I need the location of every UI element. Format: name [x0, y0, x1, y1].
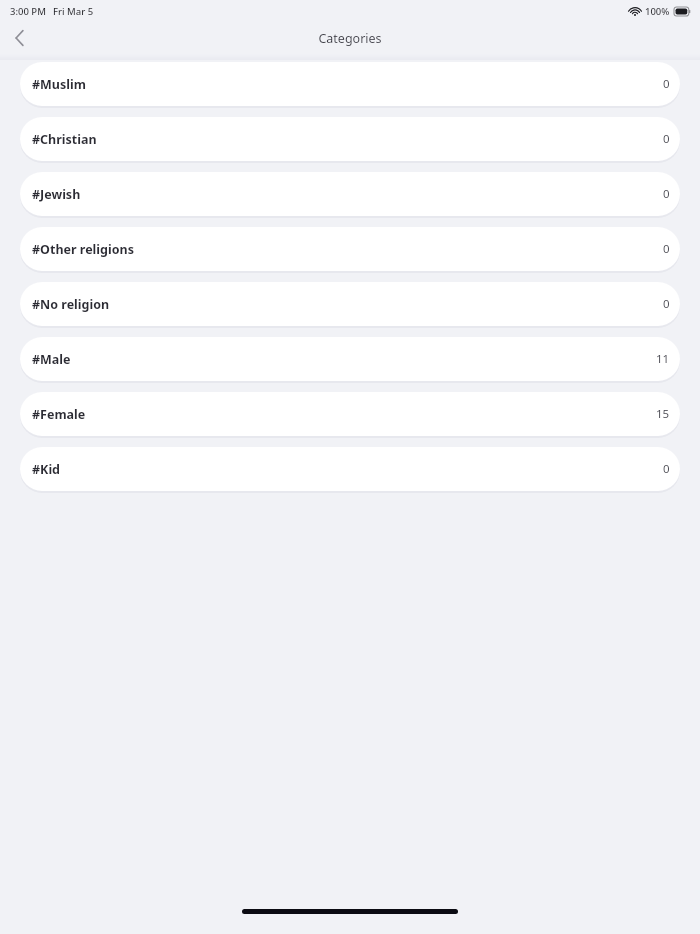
staticText: #Jewish — [32, 186, 81, 203]
button[interactable]: #Kid — [20, 447, 680, 491]
button[interactable]: Back — [4, 23, 34, 53]
button[interactable]: #Christian — [20, 117, 680, 161]
staticText: #No religion — [32, 296, 110, 313]
staticText: 15 — [656, 406, 670, 422]
staticText: 0 — [663, 461, 670, 477]
button[interactable]: #No religion — [20, 282, 680, 326]
button[interactable]: #Other religions — [20, 227, 680, 271]
staticText: #Muslim — [32, 76, 86, 93]
staticText: 11 — [656, 351, 670, 367]
staticText: 0 — [663, 186, 670, 202]
staticText: 0 — [663, 241, 670, 257]
staticText: #Christian — [32, 131, 97, 148]
staticText: 100% — [645, 5, 670, 18]
staticText: Fri Mar 5 — [53, 5, 94, 18]
button[interactable]: #Male — [20, 337, 680, 381]
staticText: 3:00 PM — [10, 5, 46, 18]
button[interactable]: #Jewish — [20, 172, 680, 216]
staticText: #Male — [32, 351, 71, 368]
staticText: #Kid — [32, 461, 61, 478]
staticText: #Female — [32, 406, 86, 423]
staticText: 0 — [663, 296, 670, 312]
button[interactable]: #Muslim — [20, 62, 680, 106]
staticText: #Other religions — [32, 241, 134, 258]
staticText: Categories — [318, 30, 382, 47]
button[interactable]: #Female — [20, 392, 680, 436]
staticText: 0 — [663, 76, 670, 92]
staticText: 0 — [663, 131, 670, 147]
